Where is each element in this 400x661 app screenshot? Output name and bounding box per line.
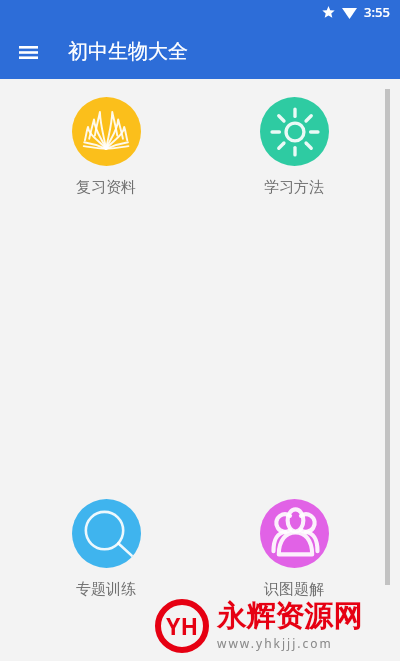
staticText: 专题训练: [46, 580, 166, 599]
button[interactable]: 专题训练: [46, 499, 166, 599]
staticText: YH: [166, 610, 198, 641]
staticText: 初中生物大全: [68, 39, 188, 64]
button[interactable]: 识图题解: [234, 499, 354, 599]
staticText: 复习资料: [46, 178, 166, 197]
staticText: 永辉资源网: [217, 598, 362, 635]
staticText: 学习方法: [234, 178, 354, 197]
button[interactable]: Open navigation menu: [6, 30, 50, 74]
staticText: www.yhkjjj.com: [217, 635, 333, 651]
button[interactable]: 复习资料: [46, 97, 166, 197]
staticText: 识图题解: [234, 580, 354, 599]
button[interactable]: 学习方法: [234, 97, 354, 197]
staticText: 3:55: [364, 3, 390, 21]
